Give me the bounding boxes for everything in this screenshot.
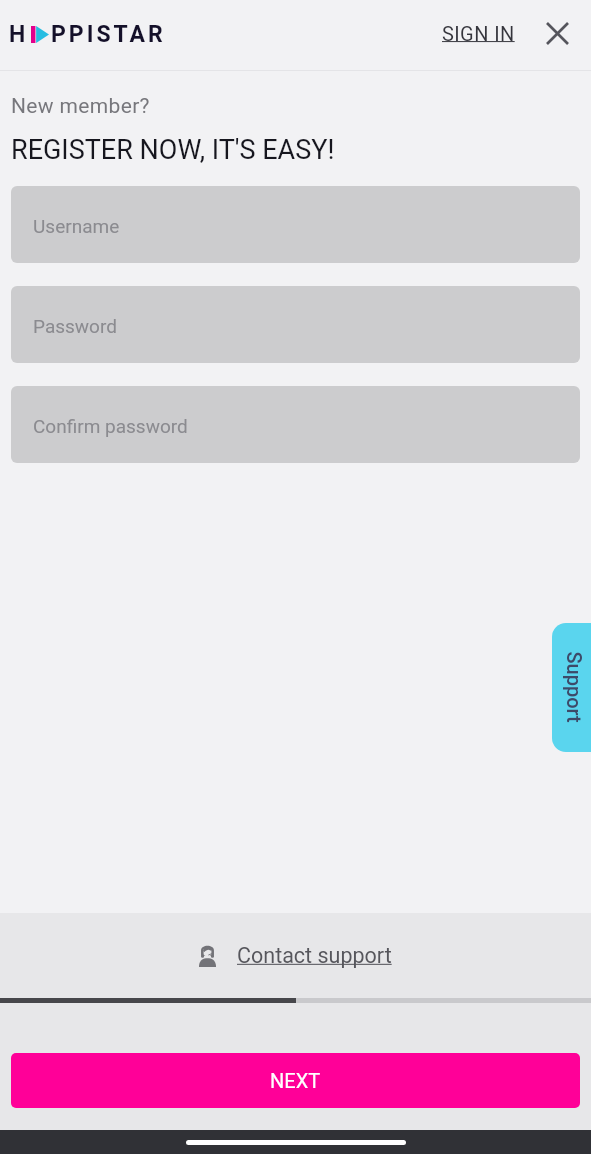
button[interactable]: Close — [535, 11, 579, 55]
staticText: Contact support — [237, 943, 392, 968]
staticText: New member? — [11, 94, 150, 119]
staticText: Support — [562, 651, 585, 723]
button[interactable]: Password — [11, 286, 580, 363]
staticText: SIGN IN — [442, 22, 515, 45]
button[interactable]: Username — [11, 186, 580, 263]
staticText: PPISTAR — [51, 21, 166, 48]
staticText: NEXT — [270, 1069, 321, 1092]
staticText: Password — [33, 315, 117, 337]
button[interactable]: Support — [552, 623, 591, 752]
button[interactable]: SIGN IN — [434, 12, 523, 55]
button[interactable]: Confirm password — [11, 386, 580, 463]
button[interactable]: Contact support — [199, 943, 392, 968]
staticText: Confirm password — [33, 415, 188, 437]
staticText: Username — [33, 215, 120, 237]
staticText: REGISTER NOW, IT'S EASY! — [11, 134, 335, 166]
button[interactable]: NEXT — [11, 1053, 580, 1108]
staticText: H — [9, 21, 29, 48]
